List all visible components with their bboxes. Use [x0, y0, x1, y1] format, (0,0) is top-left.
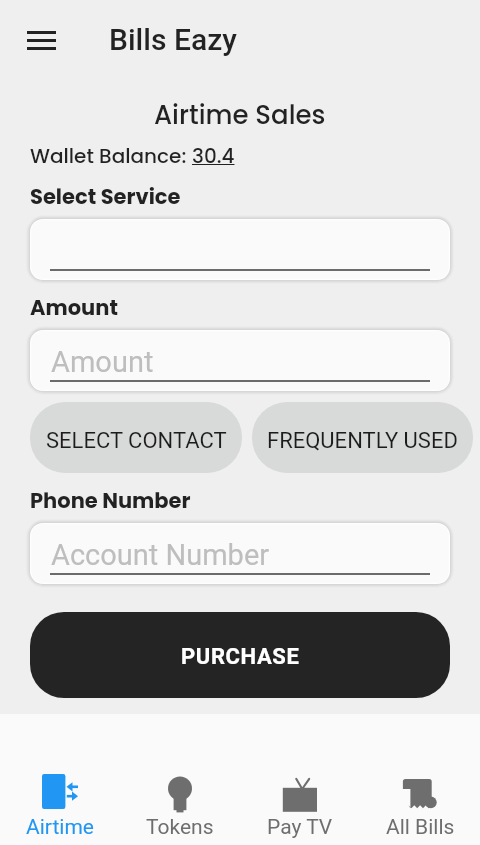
button[interactable]: Amount	[30, 330, 450, 391]
staticText: All Bills	[386, 815, 455, 840]
button[interactable]: Account Number	[30, 523, 450, 584]
staticText: Tokens	[146, 815, 214, 840]
button[interactable]: FREQUENTLY USED	[252, 402, 473, 473]
staticText: PURCHASE	[181, 644, 300, 670]
staticText: Pay TV	[267, 815, 333, 840]
button[interactable]	[30, 219, 450, 280]
staticText: Amount	[51, 345, 154, 379]
staticText: Airtime	[26, 815, 94, 840]
staticText: Phone Number	[30, 486, 191, 515]
staticText: Select Service	[30, 182, 181, 211]
staticText: Airtime Sales	[154, 97, 326, 133]
staticText: Bills Eazy	[109, 22, 237, 57]
staticText: Account Number	[51, 538, 270, 572]
button[interactable]: SELECT CONTACT	[30, 402, 242, 473]
button[interactable]: Open navigation menu	[14, 13, 68, 67]
staticText: Wallet Balance:	[30, 142, 192, 170]
button[interactable]: Pay TV	[240, 714, 360, 845]
staticText: FREQUENTLY USED	[267, 428, 458, 454]
staticText: Amount	[30, 293, 118, 322]
button[interactable]: Airtime	[0, 714, 120, 845]
button[interactable]: All Bills	[360, 714, 480, 845]
button[interactable]: Tokens	[120, 714, 240, 845]
staticText: 30.4	[192, 142, 235, 170]
button[interactable]: PURCHASE	[30, 612, 450, 698]
staticText: SELECT CONTACT	[46, 428, 227, 454]
